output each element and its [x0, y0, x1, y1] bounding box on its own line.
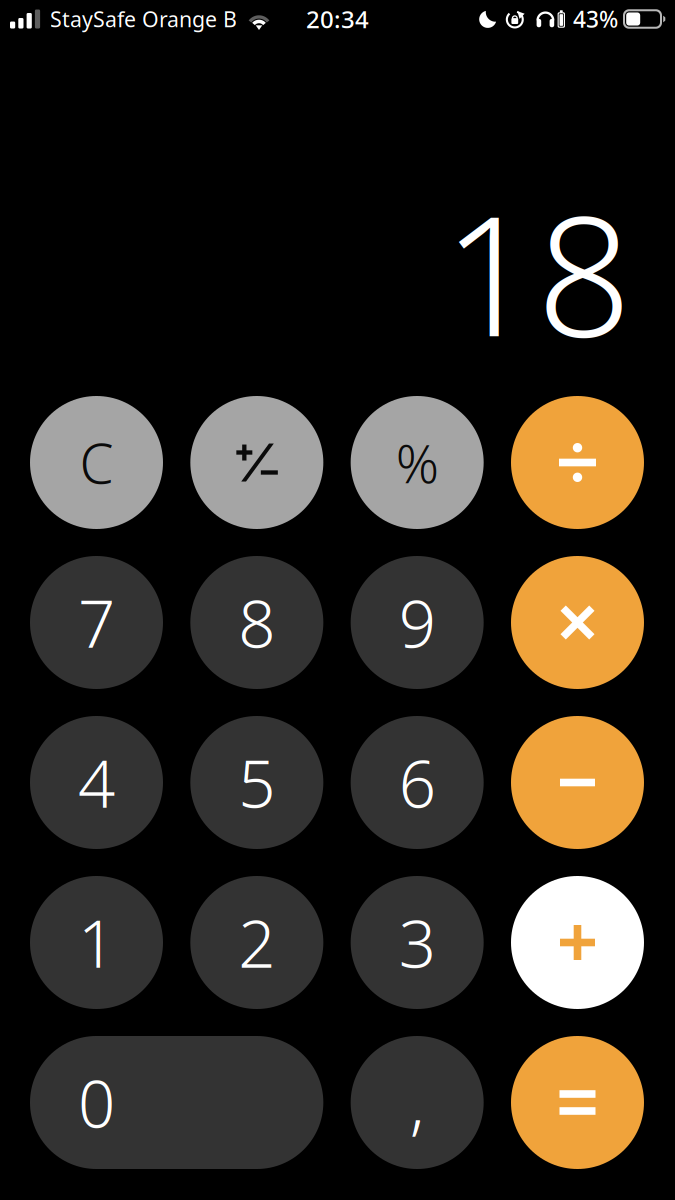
button[interactable]: 8 [190, 556, 323, 689]
staticText: , [410, 1059, 425, 1146]
staticText: 3 [399, 899, 436, 986]
button[interactable]: Divide [511, 396, 644, 529]
button[interactable]: Subtract [511, 716, 644, 849]
button[interactable]: 3 [351, 876, 484, 1009]
staticText: StaySafe Orange B [50, 5, 237, 33]
button[interactable]: 2 [190, 876, 323, 1009]
staticText: C [79, 426, 113, 499]
button[interactable]: , [351, 1036, 484, 1169]
button[interactable]: 7 [30, 556, 163, 689]
staticText: 9 [399, 579, 436, 666]
staticText: 1 [78, 899, 115, 986]
staticText: % [396, 427, 439, 498]
button[interactable]: % [351, 396, 484, 529]
staticText: 43% [573, 4, 618, 34]
staticText: 0 [78, 1059, 115, 1146]
button[interactable]: 4 [30, 716, 163, 849]
button[interactable]: 9 [351, 556, 484, 689]
button[interactable]: Multiply [511, 556, 644, 689]
staticText: 6 [399, 739, 436, 826]
staticText: 5 [238, 739, 275, 826]
button[interactable]: 1 [30, 876, 163, 1009]
button[interactable]: 6 [351, 716, 484, 849]
button[interactable]: 5 [190, 716, 323, 849]
staticText: 7 [78, 579, 115, 666]
button[interactable]: C [30, 396, 163, 529]
staticText: 20:34 [306, 3, 369, 35]
staticText: 2 [238, 899, 275, 986]
button[interactable]: Add [511, 876, 644, 1009]
button[interactable]: 0 [30, 1036, 323, 1169]
staticText: 8 [238, 579, 275, 666]
staticText: 18 [443, 162, 631, 382]
staticText: 4 [78, 739, 115, 826]
button[interactable]: Equals [511, 1036, 644, 1169]
button[interactable]: Toggle sign [190, 396, 323, 529]
